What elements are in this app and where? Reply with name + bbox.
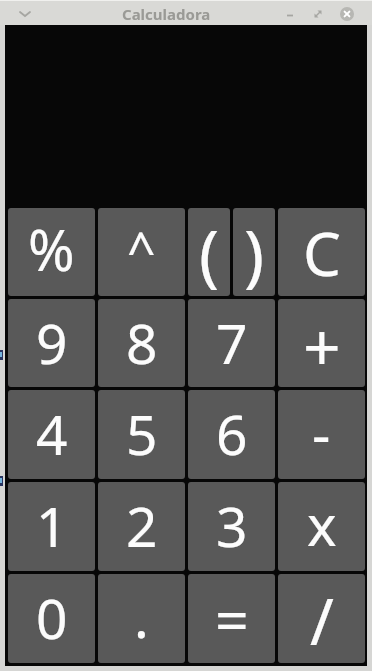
button[interactable] [310, 6, 326, 22]
button[interactable]: 8 [98, 299, 185, 387]
button[interactable]: 2 [98, 482, 185, 571]
staticText: + [303, 300, 341, 387]
staticText: C [303, 212, 341, 294]
staticText: ( [199, 208, 220, 295]
button[interactable]: = [188, 574, 275, 663]
staticText: 9 [36, 305, 68, 380]
staticText: Calculadora [122, 4, 211, 24]
staticText: - [312, 394, 331, 472]
button[interactable]: C [278, 208, 365, 296]
staticText: 4 [36, 396, 68, 471]
button[interactable] [17, 6, 33, 22]
button[interactable]: / [278, 574, 365, 663]
button[interactable]: % [8, 208, 95, 296]
staticText: 2 [126, 488, 158, 563]
button[interactable]: 0 [8, 574, 95, 663]
staticText: 5 [126, 396, 158, 471]
button[interactable] [340, 7, 354, 21]
button[interactable]: ) [233, 208, 275, 296]
button[interactable]: 7 [188, 299, 275, 387]
button[interactable]: . [98, 574, 185, 663]
button[interactable]: x [278, 482, 365, 571]
staticText: . [134, 579, 149, 654]
button[interactable]: 5 [98, 390, 185, 479]
button[interactable]: - [278, 390, 365, 479]
button[interactable]: ( [188, 208, 230, 296]
staticText: ) [244, 208, 265, 295]
button[interactable]: 3 [188, 482, 275, 571]
staticText: 3 [216, 488, 248, 563]
button[interactable]: 4 [8, 390, 95, 479]
staticText: 1 [36, 488, 68, 563]
staticText: 0 [36, 580, 68, 655]
button[interactable]: 1 [8, 482, 95, 571]
staticText: ^ [127, 215, 156, 283]
staticText: / [310, 577, 334, 663]
staticText: 7 [216, 305, 248, 380]
button[interactable] [282, 6, 298, 22]
button[interactable]: 9 [8, 299, 95, 387]
staticText: x [307, 486, 337, 562]
button[interactable]: + [278, 299, 365, 387]
staticText: 8 [126, 305, 158, 380]
button[interactable]: 6 [188, 390, 275, 479]
button[interactable]: ^ [98, 208, 185, 296]
staticText: % [28, 211, 75, 287]
staticText: = [215, 579, 249, 659]
staticText: 6 [216, 396, 248, 471]
